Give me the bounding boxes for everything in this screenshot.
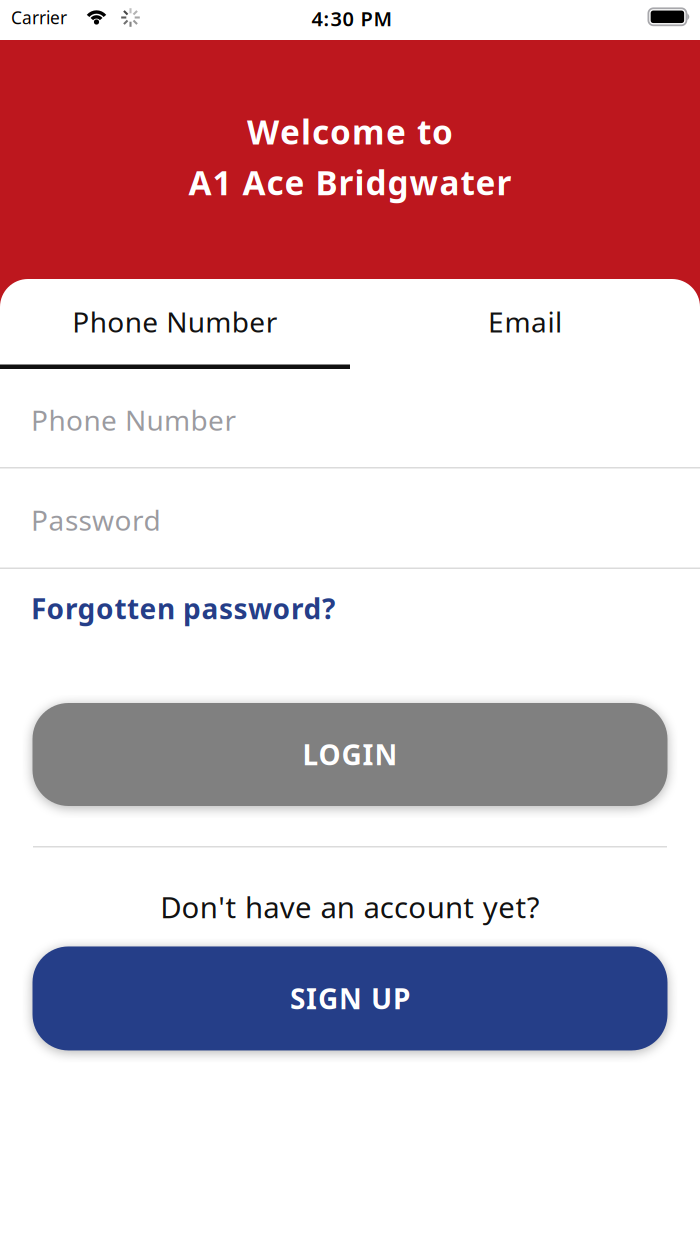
staticText: Phone Number bbox=[31, 401, 236, 439]
staticText: Password bbox=[31, 501, 160, 539]
button[interactable]: Phone Number bbox=[0, 369, 700, 467]
button[interactable]: Password bbox=[0, 468, 700, 567]
staticText: Phone Number bbox=[72, 303, 278, 340]
button[interactable]: Forgotten password? bbox=[0, 569, 700, 648]
button[interactable]: Email bbox=[350, 279, 700, 369]
staticText: A1 Ace Bridgwater bbox=[188, 160, 511, 204]
staticText: Email bbox=[488, 303, 562, 340]
staticText: Carrier bbox=[11, 6, 67, 29]
staticText: 4:30 PM bbox=[311, 5, 392, 32]
staticText: SIGN UP bbox=[290, 980, 410, 1017]
staticText: LOGIN bbox=[302, 736, 397, 773]
button[interactable]: Phone Number bbox=[0, 279, 350, 369]
staticText: Don't have an account yet? bbox=[160, 887, 540, 926]
button[interactable]: LOGIN bbox=[32, 703, 667, 806]
staticText: Forgotten password? bbox=[31, 590, 335, 627]
button[interactable]: SIGN UP bbox=[32, 946, 667, 1050]
staticText: Welcome to bbox=[247, 109, 453, 154]
